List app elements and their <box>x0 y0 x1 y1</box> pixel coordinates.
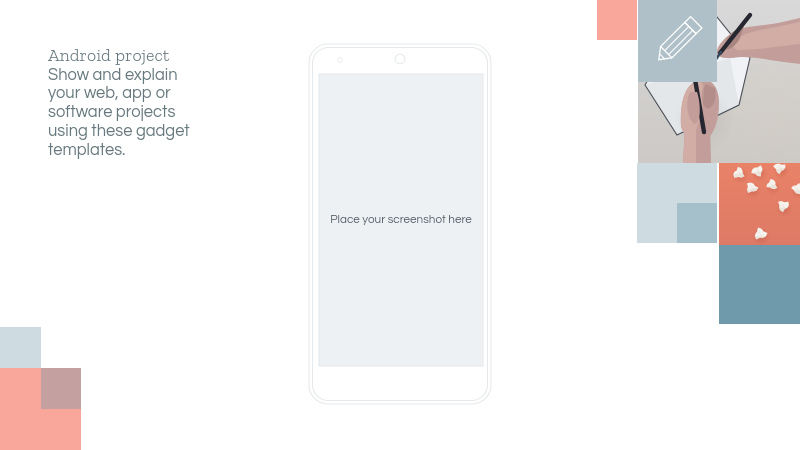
staticText: Android project <box>48 44 170 66</box>
button[interactable]: Place your screenshot here <box>319 213 483 225</box>
staticText: Place your screenshot here <box>319 213 483 225</box>
staticText: Show and explain your web, app or softwa… <box>48 66 190 158</box>
